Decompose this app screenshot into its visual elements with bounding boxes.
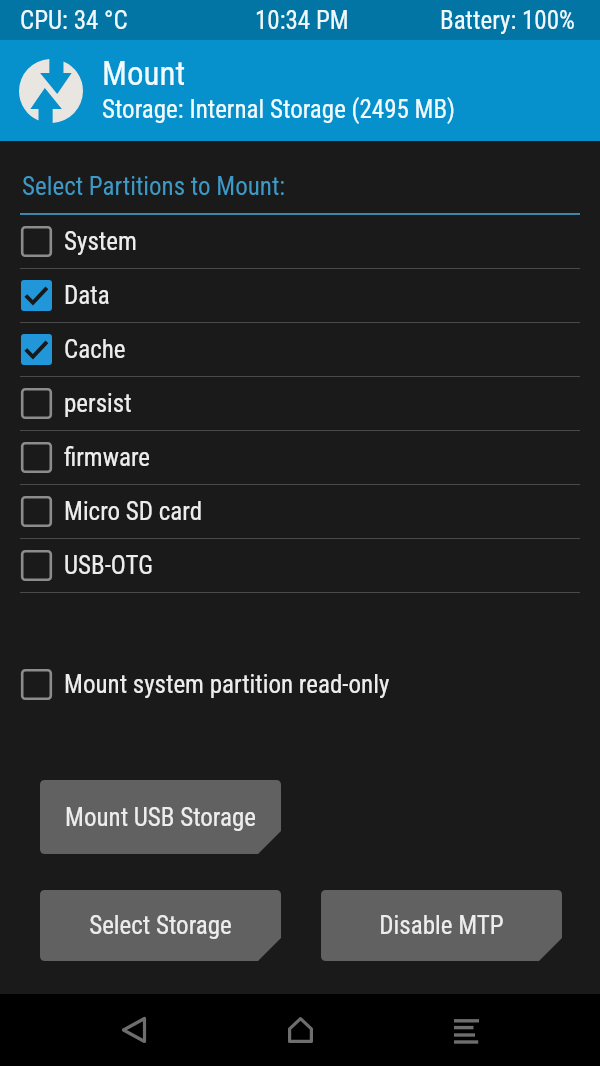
staticText: Cache: [64, 335, 126, 364]
button[interactable]: System: [0, 215, 600, 268]
staticText: Micro SD card: [64, 497, 203, 526]
staticText: CPU: 34 °C: [20, 6, 128, 35]
staticText: 10:34 PM: [255, 6, 349, 35]
staticText: firmware: [64, 443, 151, 472]
button[interactable]: Data: [0, 269, 600, 322]
staticText: Disable MTP: [379, 911, 504, 940]
button[interactable]: Cache: [0, 323, 600, 376]
staticText: Select Storage: [89, 911, 232, 940]
staticText: Data: [64, 281, 110, 310]
staticText: Storage: Internal Storage (2495 MB): [102, 95, 456, 124]
staticText: Battery: 100%: [440, 6, 575, 35]
staticText: persist: [64, 389, 132, 418]
staticText: Mount USB Storage: [65, 803, 256, 832]
button[interactable]: Mount USB Storage: [40, 780, 281, 854]
button[interactable]: USB-OTG: [0, 539, 600, 592]
staticText: System: [64, 227, 137, 256]
button[interactable]: Select Storage: [40, 890, 281, 961]
button[interactable]: Micro SD card: [0, 485, 600, 538]
button[interactable]: Back: [101, 994, 166, 1066]
button[interactable]: persist: [0, 377, 600, 430]
staticText: Select Partitions to Mount:: [22, 172, 286, 201]
button[interactable]: Menu: [434, 994, 499, 1066]
staticText: USB-OTG: [64, 551, 153, 580]
button[interactable]: Disable MTP: [321, 890, 562, 961]
button[interactable]: Mount system partition read-only: [0, 665, 600, 703]
staticText: Mount: [102, 54, 186, 93]
button[interactable]: Home: [268, 994, 333, 1066]
button[interactable]: firmware: [0, 431, 600, 484]
staticText: Mount system partition read-only: [64, 670, 390, 699]
